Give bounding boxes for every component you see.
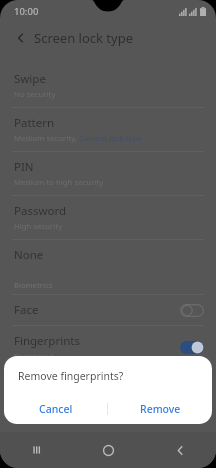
button[interactable]: Recents	[0, 432, 72, 468]
staticText: Medium to high security	[14, 177, 104, 188]
staticText: Biometrics	[14, 280, 53, 290]
staticText: Cancel	[39, 402, 73, 416]
staticText: Swipe	[14, 71, 46, 87]
staticText: Registered	[14, 351, 54, 362]
button[interactable]: Remove	[108, 394, 212, 424]
staticText: Remove fingerprints?	[18, 369, 124, 383]
staticText: Pattern	[14, 115, 55, 131]
staticText: No security	[14, 89, 56, 100]
button[interactable]: Back	[12, 29, 30, 47]
button[interactable]: Password	[0, 196, 216, 239]
staticText: PIN	[14, 159, 34, 175]
button[interactable]: Face	[0, 295, 216, 325]
button[interactable]: Fingerprints	[0, 326, 216, 369]
button[interactable]: Cancel	[4, 394, 107, 424]
staticText: Remove	[140, 402, 181, 416]
staticText: Medium security,	[14, 133, 79, 144]
staticText: 10:00	[14, 5, 39, 18]
staticText: None	[14, 247, 44, 263]
button[interactable]: Home	[72, 432, 144, 468]
staticText: Password	[14, 203, 67, 219]
staticText: Current lock type	[79, 133, 142, 144]
staticText: Screen lock type	[34, 29, 133, 47]
button[interactable]: Pattern	[0, 108, 216, 151]
staticText: Fingerprints	[14, 333, 80, 349]
staticText: Face	[14, 302, 39, 318]
staticText: High security	[14, 221, 63, 232]
button[interactable]: Back	[144, 432, 216, 468]
